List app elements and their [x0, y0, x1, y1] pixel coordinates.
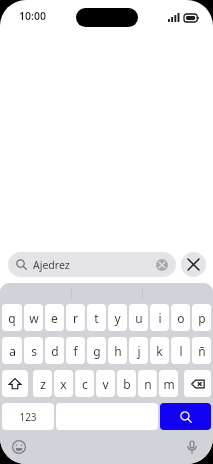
- staticText: z: [40, 376, 46, 392]
- staticText: q: [8, 310, 16, 326]
- staticText: u: [135, 310, 143, 326]
- button[interactable]: f: [66, 337, 85, 364]
- staticText: 123: [19, 410, 37, 424]
- button[interactable]: m: [159, 370, 178, 397]
- staticText: h: [114, 343, 122, 359]
- button[interactable]: a: [2, 337, 22, 364]
- button[interactable]: [143, 283, 213, 304]
- button[interactable]: u: [129, 304, 148, 331]
- button[interactable]: t: [87, 304, 106, 331]
- button[interactable]: Close search: [181, 252, 206, 277]
- button[interactable]: o: [171, 304, 190, 331]
- staticText: j: [137, 343, 141, 359]
- button[interactable]: [0, 283, 71, 304]
- button[interactable]: d: [45, 337, 64, 364]
- button[interactable]: Shift: [2, 370, 28, 397]
- button[interactable]: b: [117, 370, 136, 397]
- staticText: o: [177, 310, 185, 326]
- button[interactable]: q: [2, 304, 22, 331]
- button[interactable]: g: [87, 337, 106, 364]
- staticText: v: [102, 376, 109, 392]
- staticText: y: [114, 310, 121, 326]
- staticText: w: [29, 310, 39, 326]
- staticText: f: [73, 343, 78, 359]
- button[interactable]: z: [33, 370, 52, 397]
- staticText: p: [198, 310, 206, 326]
- staticText: l: [179, 343, 183, 359]
- button[interactable]: Ajedrez: [8, 252, 176, 277]
- button[interactable]: x: [54, 370, 73, 397]
- button[interactable]: ñ: [192, 337, 211, 364]
- button[interactable]: l: [171, 337, 190, 364]
- staticText: Ajedrez: [33, 258, 70, 272]
- button[interactable]: Search: [160, 403, 211, 430]
- staticText: i: [158, 310, 162, 326]
- staticText: x: [60, 376, 67, 392]
- staticText: d: [51, 343, 59, 359]
- staticText: k: [156, 343, 163, 359]
- staticText: a: [9, 343, 16, 359]
- button[interactable]: Backspace: [184, 370, 211, 397]
- staticText: t: [94, 310, 99, 326]
- staticText: c: [82, 376, 88, 392]
- button[interactable]: v: [96, 370, 115, 397]
- staticText: b: [123, 376, 131, 392]
- staticText: m: [163, 376, 175, 392]
- button[interactable]: Clear text: [156, 259, 168, 271]
- staticText: r: [73, 310, 78, 326]
- button[interactable]: i: [150, 304, 169, 331]
- button[interactable]: s: [24, 337, 43, 364]
- button[interactable]: w: [24, 304, 43, 331]
- staticText: e: [51, 310, 58, 326]
- button[interactable]: n: [138, 370, 157, 397]
- button[interactable]: Emoji: [8, 436, 30, 458]
- button[interactable]: e: [45, 304, 64, 331]
- staticText: n: [144, 376, 152, 392]
- staticText: s: [31, 343, 37, 359]
- staticText: 10:00: [19, 9, 46, 23]
- staticText: ñ: [198, 343, 206, 359]
- button[interactable]: k: [150, 337, 169, 364]
- button[interactable]: y: [108, 304, 127, 331]
- button[interactable]: h: [108, 337, 127, 364]
- button[interactable]: c: [75, 370, 94, 397]
- button[interactable]: 123: [2, 403, 54, 430]
- button[interactable]: r: [66, 304, 85, 331]
- button[interactable]: j: [129, 337, 148, 364]
- button[interactable]: Dictate: [181, 436, 203, 458]
- button[interactable]: p: [192, 304, 211, 331]
- staticText: g: [93, 343, 101, 359]
